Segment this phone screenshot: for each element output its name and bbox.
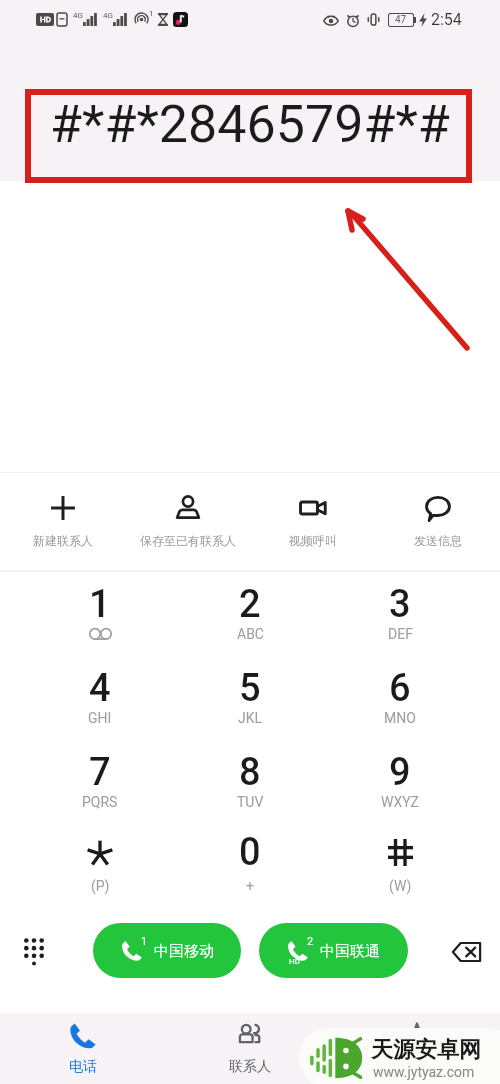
button[interactable]: 发送信息 bbox=[375, 473, 500, 570]
button[interactable]: 6 bbox=[325, 656, 475, 740]
staticText: 47 bbox=[395, 14, 407, 26]
staticText: 2 bbox=[239, 582, 261, 626]
staticText: 中国移动 bbox=[154, 942, 214, 961]
button[interactable]: 1 bbox=[93, 923, 241, 978]
button[interactable]: 保存至已有联系人 bbox=[125, 473, 250, 570]
staticText: 7 bbox=[89, 750, 111, 794]
staticText: DEF bbox=[388, 626, 413, 642]
staticText: 8 bbox=[239, 750, 261, 794]
staticText: 联系人 bbox=[229, 1058, 271, 1076]
staticText: 电话 bbox=[69, 1058, 97, 1076]
button[interactable]: 5 bbox=[175, 656, 325, 740]
staticText: HD bbox=[289, 957, 300, 966]
staticText: 1 bbox=[89, 582, 111, 626]
staticText: + bbox=[246, 878, 254, 894]
button[interactable]: 联系人 bbox=[166, 1013, 333, 1084]
staticText: ABC bbox=[237, 626, 264, 642]
staticText: 收藏 bbox=[403, 1058, 431, 1076]
staticText: 0 bbox=[239, 830, 261, 874]
staticText: 4G bbox=[103, 11, 113, 20]
button[interactable]: (W) bbox=[325, 824, 475, 908]
button[interactable]: 2 bbox=[175, 572, 325, 656]
button[interactable]: 0 bbox=[175, 824, 325, 908]
staticText: 中国联通 bbox=[320, 942, 380, 961]
staticText: (P) bbox=[91, 878, 110, 894]
button[interactable]: 1 bbox=[25, 572, 175, 656]
staticText: HD bbox=[40, 15, 51, 24]
staticText: 2:54 bbox=[431, 10, 462, 29]
staticText: 新建联系人 bbox=[33, 533, 93, 548]
staticText: PQRS bbox=[82, 794, 118, 810]
staticText: 1 bbox=[149, 9, 154, 18]
button[interactable]: 视频呼叫 bbox=[250, 473, 375, 570]
staticText: 天源安卓网 bbox=[371, 1036, 481, 1064]
staticText: TUV bbox=[237, 794, 264, 810]
staticText: (W) bbox=[389, 878, 412, 894]
button[interactable]: 2 bbox=[259, 923, 408, 978]
staticText: 视频呼叫 bbox=[289, 533, 337, 548]
staticText: JKL bbox=[238, 710, 263, 726]
button[interactable]: 收藏 bbox=[333, 1013, 500, 1084]
staticText: WXYZ bbox=[381, 794, 419, 810]
button[interactable]: Delete bbox=[424, 896, 500, 1005]
staticText: #*#*2846579#*# bbox=[50, 94, 450, 155]
staticText: MNO bbox=[384, 710, 416, 726]
staticText: 3 bbox=[389, 582, 411, 626]
button[interactable]: 电话 bbox=[0, 1013, 166, 1084]
staticText: 4 bbox=[89, 666, 111, 710]
staticText: 9 bbox=[389, 750, 411, 794]
staticText: 保存至已有联系人 bbox=[140, 533, 236, 548]
button[interactable]: Hide dialpad bbox=[0, 896, 67, 1005]
button[interactable]: 7 bbox=[25, 740, 175, 824]
button[interactable]: 8 bbox=[175, 740, 325, 824]
button[interactable]: (P) bbox=[25, 824, 175, 908]
staticText: www.jytyaz.com bbox=[373, 1064, 475, 1080]
button[interactable]: 新建联系人 bbox=[0, 473, 125, 570]
staticText: 1 bbox=[141, 935, 148, 948]
button[interactable]: 3 bbox=[325, 572, 475, 656]
staticText: 4G bbox=[73, 11, 83, 20]
staticText: 5 bbox=[239, 666, 261, 710]
staticText: 6 bbox=[389, 666, 411, 710]
staticText: 发送信息 bbox=[414, 533, 462, 548]
staticText: 2 bbox=[307, 935, 314, 948]
button[interactable]: 4 bbox=[25, 656, 175, 740]
button[interactable]: 9 bbox=[325, 740, 475, 824]
staticText: GHI bbox=[88, 710, 112, 726]
